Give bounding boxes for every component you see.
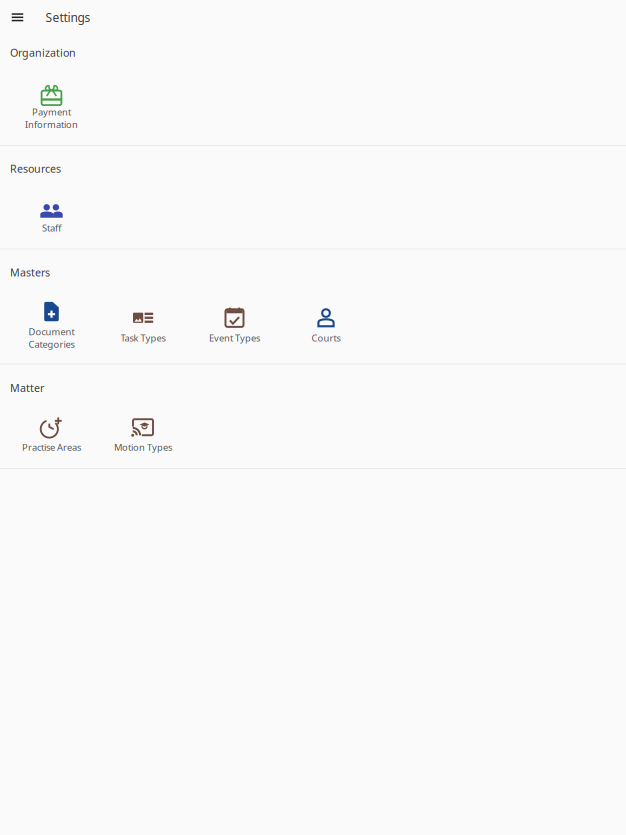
staticText: Settings bbox=[45, 9, 90, 25]
button[interactable]: Task Types bbox=[97, 306, 189, 344]
staticText: Resources bbox=[10, 162, 61, 176]
staticText: Event Types bbox=[209, 332, 260, 344]
button[interactable]: Menu bbox=[0, 0, 35, 34]
staticText: Courts bbox=[311, 332, 340, 344]
staticText: Information bbox=[25, 118, 78, 131]
staticText: Masters bbox=[10, 265, 50, 279]
button[interactable]: Motion Types bbox=[97, 415, 189, 453]
staticText: Matter bbox=[10, 381, 44, 395]
staticText: Motion Types bbox=[114, 441, 172, 453]
staticText: Staff bbox=[42, 222, 61, 234]
button[interactable]: Document bbox=[6, 299, 97, 350]
staticText: Organization bbox=[10, 46, 76, 60]
staticText: Payment bbox=[32, 106, 71, 118]
staticText: Document bbox=[28, 325, 74, 338]
staticText: Practise Areas bbox=[22, 441, 81, 453]
button[interactable]: Staff bbox=[6, 196, 97, 234]
button[interactable]: Practise Areas bbox=[6, 415, 97, 453]
button[interactable]: Courts bbox=[280, 306, 372, 344]
staticText: Task Types bbox=[120, 332, 165, 344]
button[interactable]: Payment bbox=[6, 80, 97, 131]
button[interactable]: Event Types bbox=[189, 306, 280, 344]
staticText: Categories bbox=[28, 338, 74, 350]
